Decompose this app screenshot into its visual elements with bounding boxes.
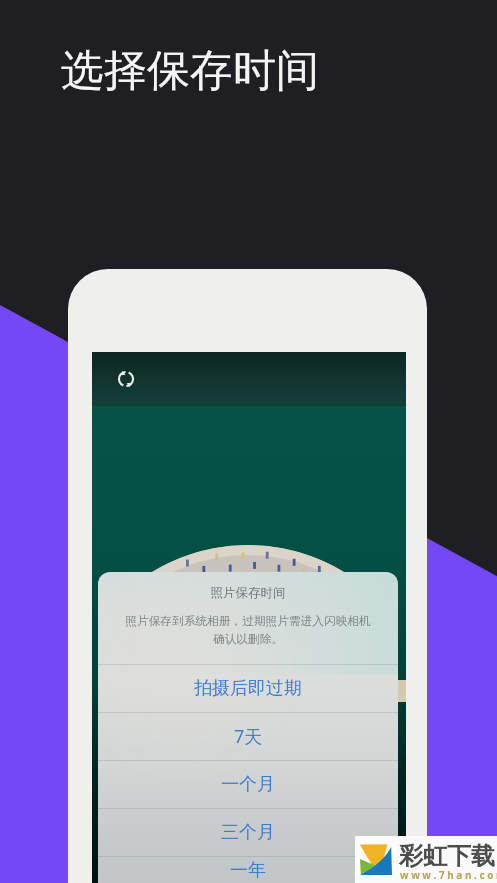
staticText: 拍摄后即过期 — [194, 677, 302, 700]
staticText: 一个月 — [221, 773, 275, 796]
staticText: 照片保存到系统相册，过期照片需进入闪映相机确认以删除。 — [121, 614, 375, 646]
button[interactable]: Switch camera — [115, 368, 137, 390]
staticText: 彩虹下载 — [399, 841, 495, 871]
staticText: 一年 — [230, 859, 266, 882]
button[interactable]: 三个月 — [98, 809, 398, 856]
staticText: 照片保存时间 — [121, 585, 375, 601]
button[interactable]: 一个月 — [98, 761, 398, 808]
staticText: 三个月 — [221, 821, 275, 844]
staticText: w w w . 7 h a n . c o m — [400, 868, 497, 882]
button[interactable]: 7天 — [98, 713, 398, 760]
button[interactable]: 一年 — [98, 857, 398, 883]
button[interactable]: 拍摄后即过期 — [98, 665, 398, 712]
staticText: 7天 — [234, 724, 263, 749]
staticText: 选择保存时间 — [61, 44, 319, 98]
